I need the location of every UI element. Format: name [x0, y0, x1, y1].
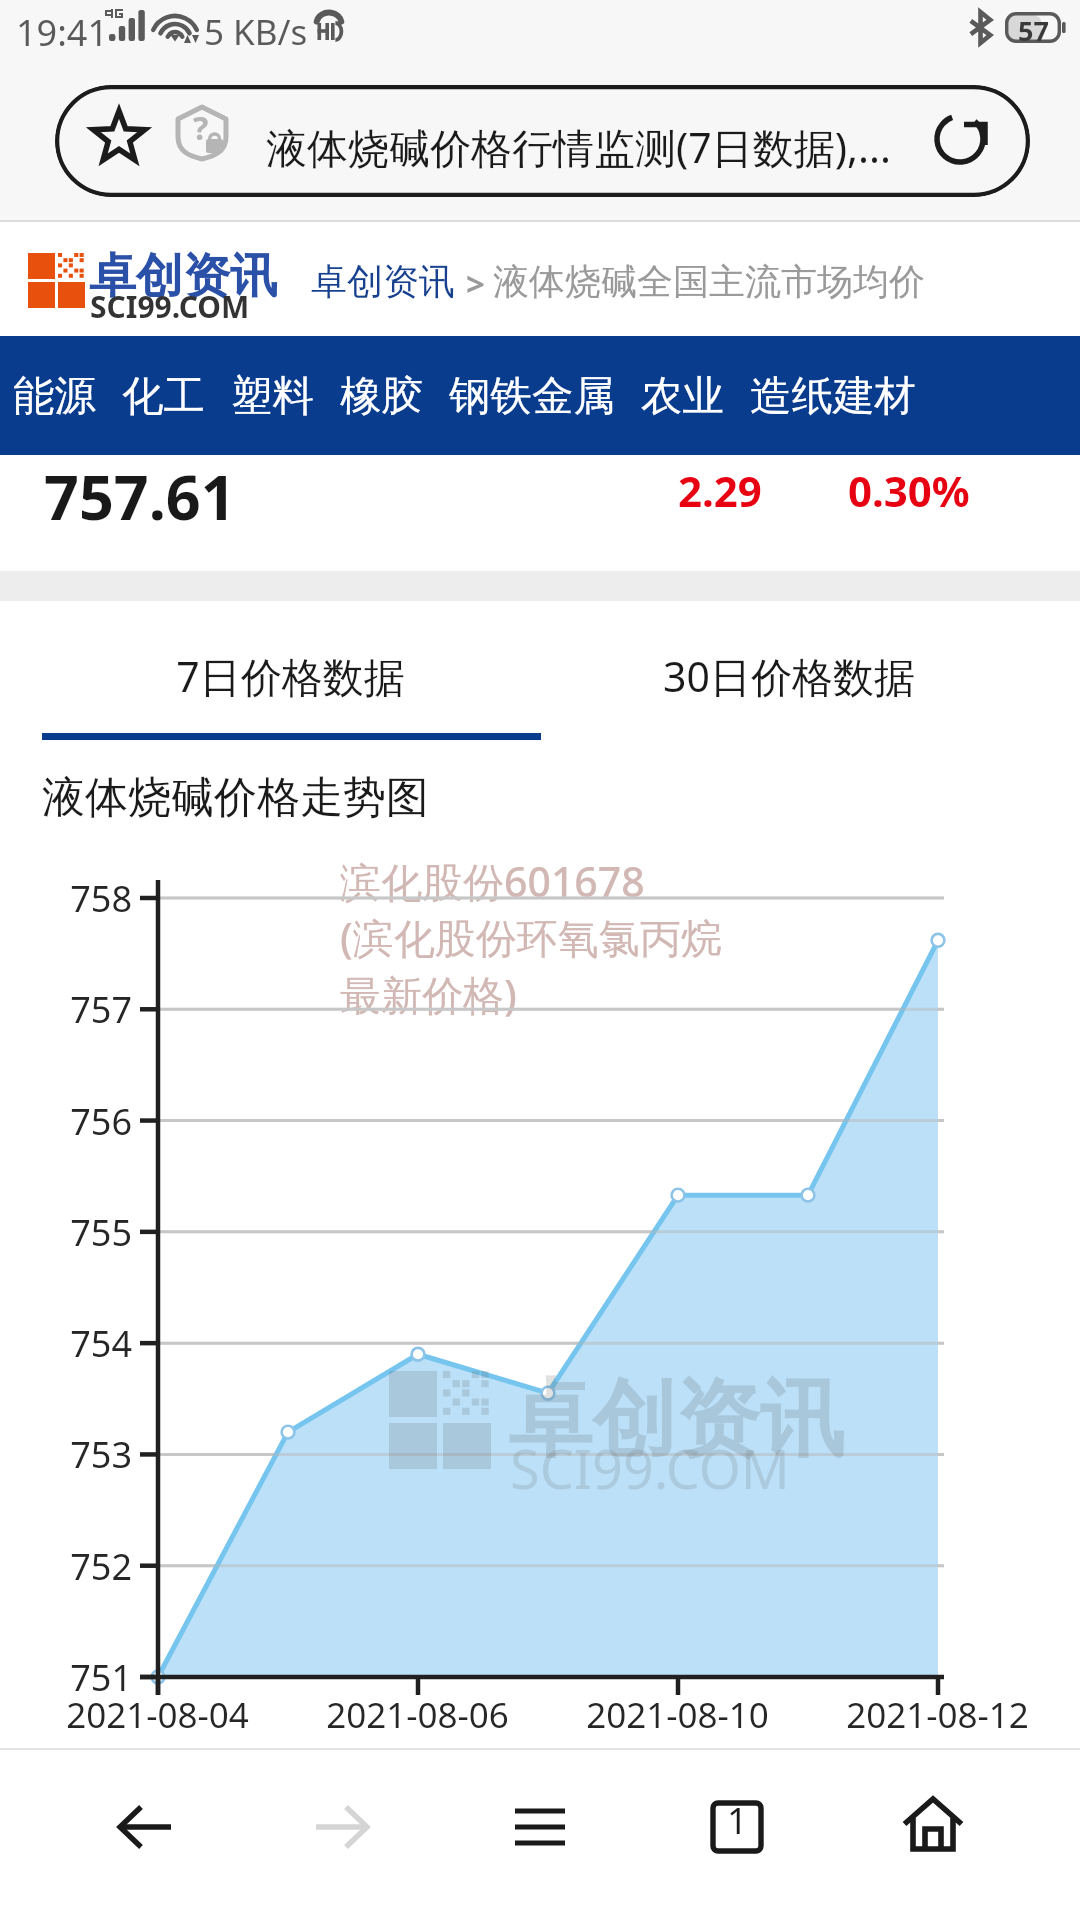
staticText: SCI99.COM — [90, 286, 250, 327]
staticText: 液体烧碱全国主流市场均价 — [493, 259, 925, 304]
staticText: 2021-08-10 — [586, 1691, 769, 1739]
staticText: 0.30% — [848, 462, 970, 519]
staticText: ? — [193, 106, 209, 150]
staticText: 757 — [70, 985, 132, 1034]
staticText: 753 — [70, 1430, 132, 1479]
button[interactable]: Menu — [455, 1742, 625, 1912]
button[interactable]: Bookmark — [55, 85, 1030, 197]
staticText: 液体烧碱价格行情监测(7日数据),... — [266, 119, 892, 175]
button[interactable]: 30日价格数据 — [540, 601, 1080, 755]
button[interactable]: 钢铁金属 — [436, 370, 628, 422]
button[interactable]: 7日价格数据 — [0, 601, 540, 755]
staticText: 5 KB/s — [204, 8, 308, 56]
button[interactable]: 农业 — [628, 370, 737, 422]
staticText: (滨化股份环氧氯丙烷 — [340, 909, 722, 965]
staticText: 752 — [70, 1542, 132, 1591]
staticText: 755 — [70, 1208, 132, 1257]
staticText: 2021-08-04 — [66, 1691, 249, 1739]
staticText: 滨化股份601678 — [340, 853, 645, 909]
staticText: 756 — [70, 1097, 132, 1146]
button[interactable]: 塑料 — [218, 370, 327, 422]
button[interactable]: Bookmark — [84, 101, 154, 171]
button[interactable]: Back — [60, 1742, 230, 1912]
staticText: 30日价格数据 — [663, 648, 915, 704]
button[interactable]: Site information — [172, 103, 232, 163]
staticText: 757.61 — [44, 455, 236, 538]
button[interactable]: Forward — [257, 1742, 427, 1912]
button[interactable]: Reload — [925, 103, 995, 173]
button[interactable]: 造纸建材 — [737, 370, 929, 422]
staticText: 橡胶 — [340, 370, 423, 422]
button[interactable]: Home — [848, 1742, 1018, 1912]
staticText: 7日价格数据 — [176, 648, 405, 704]
button[interactable]: 化工 — [109, 370, 218, 422]
staticText: 液体烧碱价格走势图 — [42, 771, 429, 825]
staticText: 2021-08-12 — [846, 1691, 1029, 1739]
staticText: 化工 — [122, 370, 205, 422]
staticText: 2021-08-06 — [326, 1691, 509, 1739]
staticText: 造纸建材 — [750, 370, 916, 422]
staticText: 57 — [1018, 12, 1049, 43]
button[interactable]: 能源 — [0, 370, 109, 422]
staticText: 能源 — [13, 370, 96, 422]
staticText: 2.29 — [678, 462, 762, 519]
staticText: 农业 — [641, 370, 724, 422]
staticText: 卓创资讯 — [311, 259, 455, 304]
button[interactable]: 卓创资讯 — [311, 259, 455, 304]
staticText: 卓创资讯 — [508, 1367, 844, 1473]
staticText: 卓创资讯 — [89, 247, 277, 306]
button[interactable]: Tabs — [652, 1742, 822, 1912]
button[interactable]: 橡胶 — [327, 370, 436, 422]
staticText: 19:41 — [16, 8, 109, 57]
staticText: > — [466, 261, 485, 306]
staticText: 钢铁金属 — [449, 370, 615, 422]
staticText: 最新价格) — [340, 966, 517, 1022]
staticText: 1 — [727, 1796, 748, 1845]
staticText: 751 — [70, 1653, 132, 1702]
staticText: 754 — [70, 1319, 132, 1368]
staticText: 塑料 — [231, 370, 314, 422]
staticText: 758 — [70, 874, 132, 923]
staticText: SCI99.COM — [510, 1431, 790, 1505]
